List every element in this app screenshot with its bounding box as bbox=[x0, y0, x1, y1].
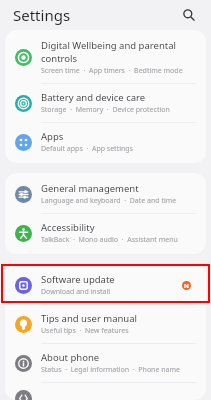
button[interactable]: Battery and device care bbox=[5, 84, 206, 122]
staticText: Screen time · App timers · Bedtime mode bbox=[41, 66, 183, 76]
staticText: General management bbox=[41, 182, 139, 195]
button[interactable]: Search bbox=[177, 3, 201, 27]
button[interactable]: Developer options bbox=[5, 383, 206, 398]
staticText: Settings bbox=[13, 5, 71, 25]
staticText: Battery and device care bbox=[41, 91, 146, 104]
staticText: TalkBack · Mono audio · Assistant menu bbox=[41, 235, 178, 245]
staticText: N bbox=[184, 282, 189, 290]
staticText: Digital Wellbeing and parental controls bbox=[41, 39, 196, 65]
staticText: Tips and user manual bbox=[41, 312, 138, 325]
button[interactable]: About phone bbox=[5, 344, 206, 382]
staticText: Default apps · App settings bbox=[41, 144, 133, 154]
staticText: Download and install bbox=[41, 287, 111, 297]
button[interactable]: Digital Wellbeing and parental controls bbox=[5, 32, 206, 83]
button[interactable]: Tips and user manual bbox=[5, 305, 206, 343]
staticText: Apps bbox=[41, 130, 64, 143]
staticText: About phone bbox=[41, 351, 100, 364]
staticText: Status · Legal information · Phone name bbox=[41, 365, 180, 375]
staticText: Storage · Memory · Device protection bbox=[41, 105, 170, 115]
staticText: Language and keyboard · Date and time bbox=[41, 196, 177, 206]
button[interactable]: General management bbox=[5, 175, 206, 213]
staticText: Accessibility bbox=[41, 221, 95, 234]
staticText: Useful tips · New features bbox=[41, 326, 129, 336]
staticText: Software update bbox=[41, 273, 115, 286]
button[interactable]: Accessibility bbox=[5, 214, 206, 252]
button[interactable]: Software update bbox=[5, 266, 206, 304]
button[interactable]: Apps bbox=[5, 123, 206, 161]
